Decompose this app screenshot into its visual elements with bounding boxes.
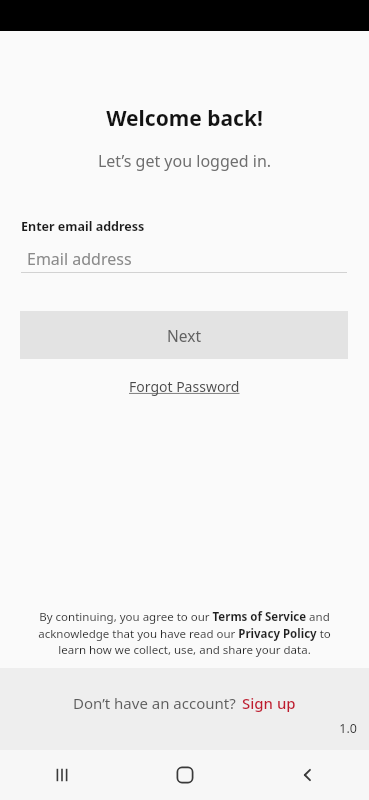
button[interactable]: Email address — [21, 246, 347, 273]
button[interactable]: Home — [123, 750, 246, 800]
button[interactable]: Back — [246, 750, 369, 800]
staticText: Welcome back! — [0, 104, 369, 133]
button[interactable]: Sign up — [242, 693, 296, 713]
staticText: 1.0 — [0, 720, 357, 737]
button[interactable]: Forgot Password — [123, 375, 246, 398]
staticText: By continuing, you agree to our Terms of… — [24, 609, 345, 657]
button[interactable]: Recent apps — [0, 750, 123, 800]
staticText: Enter email address — [21, 218, 145, 235]
staticText: Don’t have an account? — [73, 693, 236, 713]
staticText: Sign up — [242, 693, 296, 713]
staticText: Next — [167, 325, 202, 346]
staticText: Let’s get you logged in. — [0, 150, 369, 172]
button[interactable]: Next — [20, 311, 348, 359]
staticText: Email address — [27, 248, 132, 270]
staticText: Forgot Password — [129, 377, 240, 396]
